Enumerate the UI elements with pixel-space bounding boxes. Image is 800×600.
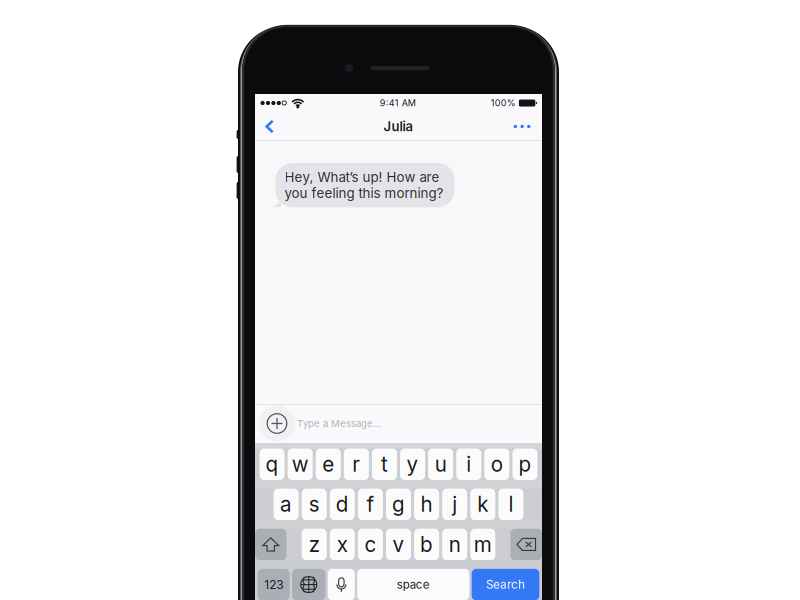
staticText: i <box>466 452 471 477</box>
staticText: d <box>336 492 349 517</box>
staticText: e <box>322 452 334 477</box>
button[interactable]: l <box>498 489 523 520</box>
staticText: z <box>309 532 320 557</box>
button[interactable]: k <box>470 489 495 520</box>
staticText: r <box>352 452 360 477</box>
button[interactable]: Shift <box>255 529 286 560</box>
button[interactable]: q <box>260 448 285 480</box>
staticText: k <box>477 492 488 517</box>
staticText: space <box>397 578 430 591</box>
button[interactable]: More options <box>500 114 542 139</box>
button[interactable]: Back <box>255 113 288 140</box>
button[interactable]: 123 <box>258 569 290 600</box>
staticText: b <box>420 532 433 557</box>
staticText: a <box>280 492 292 517</box>
button[interactable]: o <box>484 448 509 480</box>
staticText: l <box>508 492 513 517</box>
button[interactable]: m <box>470 529 495 560</box>
staticText: v <box>392 532 404 557</box>
staticText: t <box>381 452 388 477</box>
staticText: y <box>407 452 419 477</box>
staticText: f <box>366 492 374 517</box>
button[interactable]: Dictation <box>328 569 355 600</box>
button[interactable]: t <box>372 448 397 480</box>
staticText: h <box>421 492 433 517</box>
button[interactable]: g <box>386 489 411 520</box>
staticText: 123 <box>264 577 283 592</box>
staticText: 100% <box>491 97 516 108</box>
staticText: s <box>309 492 320 517</box>
staticText: g <box>392 492 405 517</box>
staticText: m <box>474 532 492 557</box>
staticText: 9:41 AM <box>380 97 416 108</box>
button[interactable]: h <box>414 489 439 520</box>
staticText: o <box>491 452 503 477</box>
button[interactable]: r <box>344 448 369 480</box>
staticText: u <box>435 452 447 477</box>
staticText: n <box>449 532 461 557</box>
staticText: x <box>337 532 348 557</box>
button[interactable]: j <box>442 489 467 520</box>
button[interactable]: v <box>386 529 411 560</box>
button[interactable]: space <box>357 569 469 600</box>
button[interactable]: w <box>288 448 313 480</box>
button[interactable]: e <box>316 448 341 480</box>
button[interactable]: n <box>442 529 467 560</box>
button[interactable]: a <box>274 489 299 520</box>
button[interactable]: u <box>428 448 453 480</box>
staticText: q <box>266 452 279 477</box>
button[interactable]: Next keyboard <box>292 569 325 600</box>
button[interactable]: y <box>400 448 425 480</box>
staticText: j <box>452 492 457 517</box>
button[interactable]: c <box>358 529 383 560</box>
staticText: Search <box>486 577 525 591</box>
button[interactable]: b <box>414 529 439 560</box>
staticText: c <box>364 532 376 557</box>
button[interactable]: f <box>358 489 383 520</box>
staticText: w <box>292 452 309 477</box>
button[interactable]: Type a Message... <box>295 407 542 439</box>
staticText: Type a Message... <box>297 418 382 429</box>
staticText: Hey, What’s up! How are you feeling this… <box>284 169 443 201</box>
button[interactable]: d <box>330 489 355 520</box>
button[interactable]: x <box>330 529 355 560</box>
button[interactable]: Delete <box>510 529 542 560</box>
staticText: Julia <box>383 119 413 134</box>
button[interactable]: i <box>456 448 481 480</box>
button[interactable]: Add attachment <box>255 405 295 441</box>
button[interactable]: Julia <box>367 114 429 139</box>
button[interactable]: s <box>302 489 327 520</box>
staticText: p <box>518 452 531 477</box>
button[interactable]: p <box>512 448 537 480</box>
button[interactable]: z <box>302 529 327 560</box>
button[interactable]: Search <box>472 569 539 600</box>
